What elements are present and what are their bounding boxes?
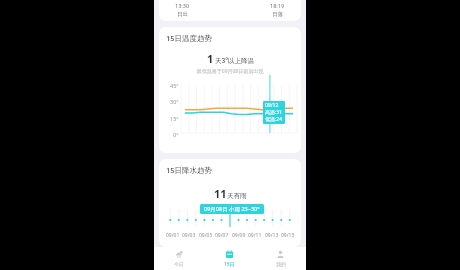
- button[interactable]: 今日: [154, 247, 204, 270]
- staticText: 13:30: [175, 2, 190, 9]
- staticText: 低温:24: [265, 116, 283, 123]
- staticText: 45°: [170, 82, 179, 89]
- staticText: 09/03: [182, 232, 196, 239]
- staticText: 09月08日 小雨 23~30°: [204, 205, 260, 213]
- staticText: 15°: [170, 115, 179, 122]
- staticText: 日落: [272, 11, 283, 18]
- staticText: 09/09: [232, 232, 246, 239]
- staticText: 我的: [276, 261, 286, 267]
- staticText: 09/07: [215, 232, 229, 239]
- staticText: 09/13: [265, 232, 279, 239]
- staticText: 15日: [224, 261, 235, 268]
- staticText: 1: [207, 51, 214, 66]
- staticText: 天有雨: [227, 192, 247, 200]
- staticText: 天3°以上降温: [215, 56, 254, 65]
- button[interactable]: 我的: [255, 247, 306, 270]
- staticText: 18:19: [270, 2, 285, 9]
- staticText: 09/05: [199, 232, 213, 239]
- staticText: 高温:31: [265, 109, 283, 116]
- staticText: 今日: [174, 261, 184, 267]
- staticText: 最低温将于09月08日前后出现: [166, 68, 294, 75]
- button[interactable]: 13:30: [159, 0, 301, 21]
- button[interactable]: 15日降水趋势: [159, 159, 301, 247]
- staticText: 日出: [177, 11, 188, 18]
- staticText: 30°: [170, 98, 179, 105]
- staticText: 15日降水趋势: [166, 165, 213, 175]
- staticText: 0°: [173, 131, 179, 138]
- button[interactable]: 15日: [204, 247, 255, 270]
- staticText: 09/01: [166, 232, 180, 239]
- staticText: 11: [214, 186, 227, 201]
- staticText: 09/12: [265, 102, 279, 109]
- staticText: 15日温度趋势: [166, 33, 213, 43]
- staticText: 09/11: [248, 232, 262, 239]
- button[interactable]: 15日温度趋势: [159, 27, 301, 153]
- staticText: 09/15: [281, 232, 295, 239]
